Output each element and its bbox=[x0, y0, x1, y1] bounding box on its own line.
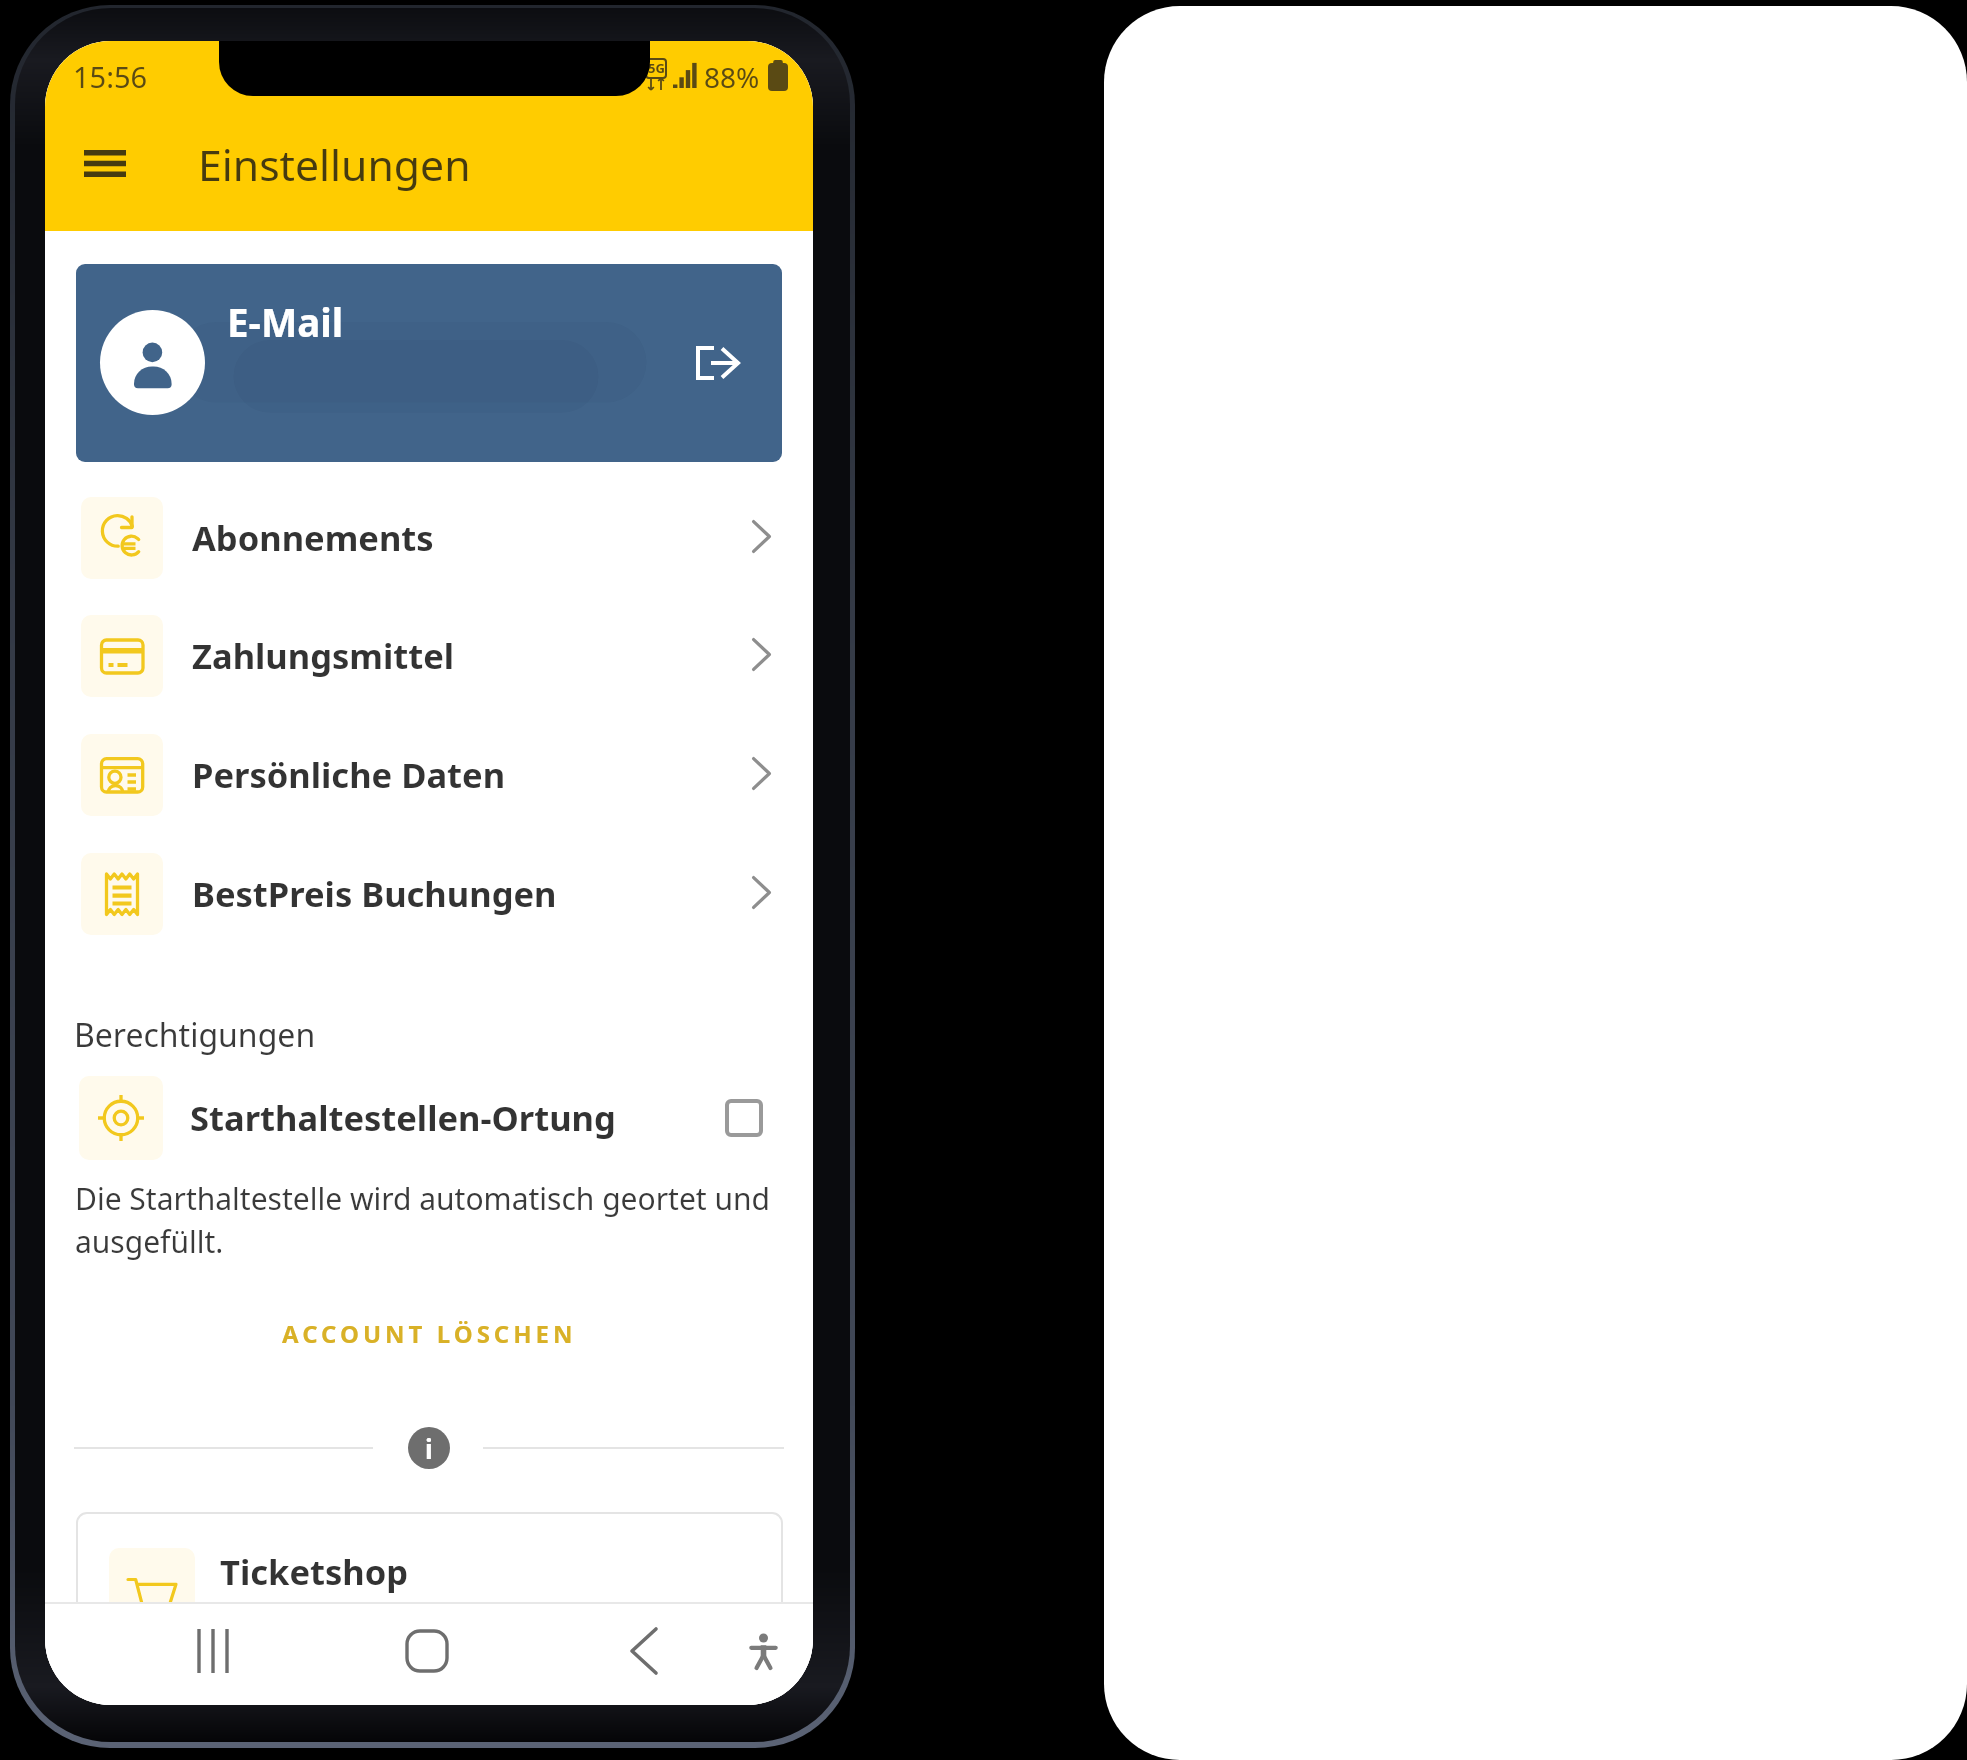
button[interactable]: Home bbox=[391, 1615, 463, 1687]
staticText: Abonnements bbox=[192, 514, 434, 561]
button[interactable]: Recents bbox=[177, 1615, 249, 1687]
staticText: Die Starthaltestelle wird automatisch ge… bbox=[75, 1178, 770, 1219]
staticText: Einstellungen bbox=[198, 135, 471, 193]
button[interactable]: Abonnements bbox=[45, 478, 813, 597]
staticText: Starthaltestellen-Ortung bbox=[190, 1094, 616, 1141]
button[interactable]: Ticketshop bbox=[76, 1512, 783, 1622]
button[interactable]: Menu bbox=[74, 135, 136, 191]
staticText: Zahlungsmittel bbox=[192, 632, 455, 679]
staticText: Berechtigungen bbox=[74, 1013, 316, 1057]
button[interactable]: Persönliche Daten bbox=[45, 715, 813, 834]
staticText: E-Mail bbox=[227, 296, 344, 348]
button[interactable]: Info bbox=[408, 1427, 450, 1469]
staticText: i bbox=[425, 1431, 433, 1466]
staticText: BestPreis Buchungen bbox=[192, 870, 557, 917]
button[interactable]: Logout bbox=[682, 328, 754, 398]
button[interactable]: Zahlungsmittel bbox=[45, 596, 813, 715]
staticText: 15:56 bbox=[73, 57, 148, 96]
button[interactable]: Toggle location permission bbox=[725, 1099, 763, 1137]
staticText: 5G bbox=[648, 59, 665, 77]
staticText: 88% bbox=[704, 58, 760, 96]
staticText: ausgefüllt. bbox=[75, 1221, 224, 1262]
button[interactable]: ACCOUNT LÖSCHEN bbox=[275, 1304, 583, 1362]
staticText: Ticketshop bbox=[220, 1548, 409, 1595]
button[interactable]: BestPreis Buchungen bbox=[45, 834, 813, 953]
staticText: Persönliche Daten bbox=[192, 751, 506, 798]
staticText: ACCOUNT LÖSCHEN bbox=[282, 1317, 577, 1350]
button[interactable]: E-Mail bbox=[76, 264, 782, 462]
button[interactable]: Back bbox=[608, 1615, 680, 1687]
button[interactable]: Toggle location permission bbox=[45, 1076, 813, 1160]
button[interactable]: Accessibility bbox=[727, 1615, 799, 1687]
